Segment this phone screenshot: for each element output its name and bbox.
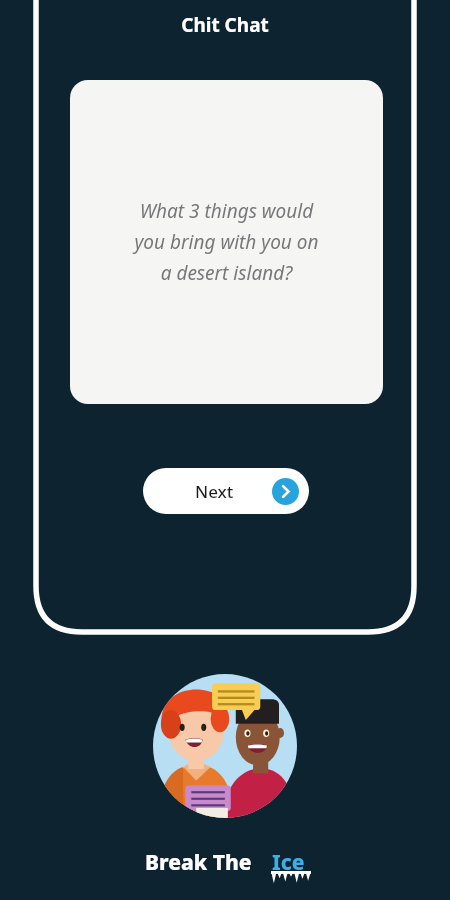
staticText: Break The — [145, 848, 257, 877]
staticText: Next — [195, 480, 234, 503]
staticText: Ice — [272, 848, 305, 877]
button[interactable]: What 3 things would you bring with you o… — [70, 80, 383, 404]
button[interactable]: Next — [143, 468, 309, 514]
staticText: What 3 things would you bring with you o… — [134, 198, 319, 286]
staticText: Chit Chat — [181, 12, 269, 38]
other: Next — [272, 478, 299, 505]
